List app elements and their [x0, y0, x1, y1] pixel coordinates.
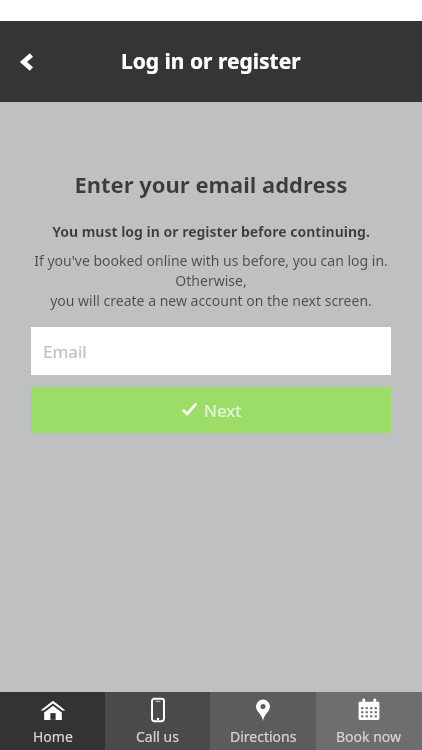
staticText: Email [43, 340, 87, 363]
button[interactable]: Call us [105, 692, 210, 750]
staticText: Call us [136, 727, 179, 746]
button[interactable]: Email [31, 327, 391, 375]
staticText: If you've booked online with us before, … [14, 251, 408, 310]
staticText: Enter your email address [0, 169, 422, 199]
button[interactable]: Next [31, 387, 391, 433]
staticText: Directions [230, 727, 297, 746]
staticText: Next [204, 399, 242, 422]
staticText: You must log in or register before conti… [0, 222, 422, 241]
button[interactable]: Directions [210, 692, 316, 750]
button[interactable]: Back [0, 35, 54, 89]
staticText: Log in or register [121, 47, 301, 76]
button[interactable]: Home [0, 692, 105, 750]
staticText: Book now [336, 727, 402, 746]
button[interactable]: Book now [316, 692, 422, 750]
staticText: Home [33, 727, 73, 746]
